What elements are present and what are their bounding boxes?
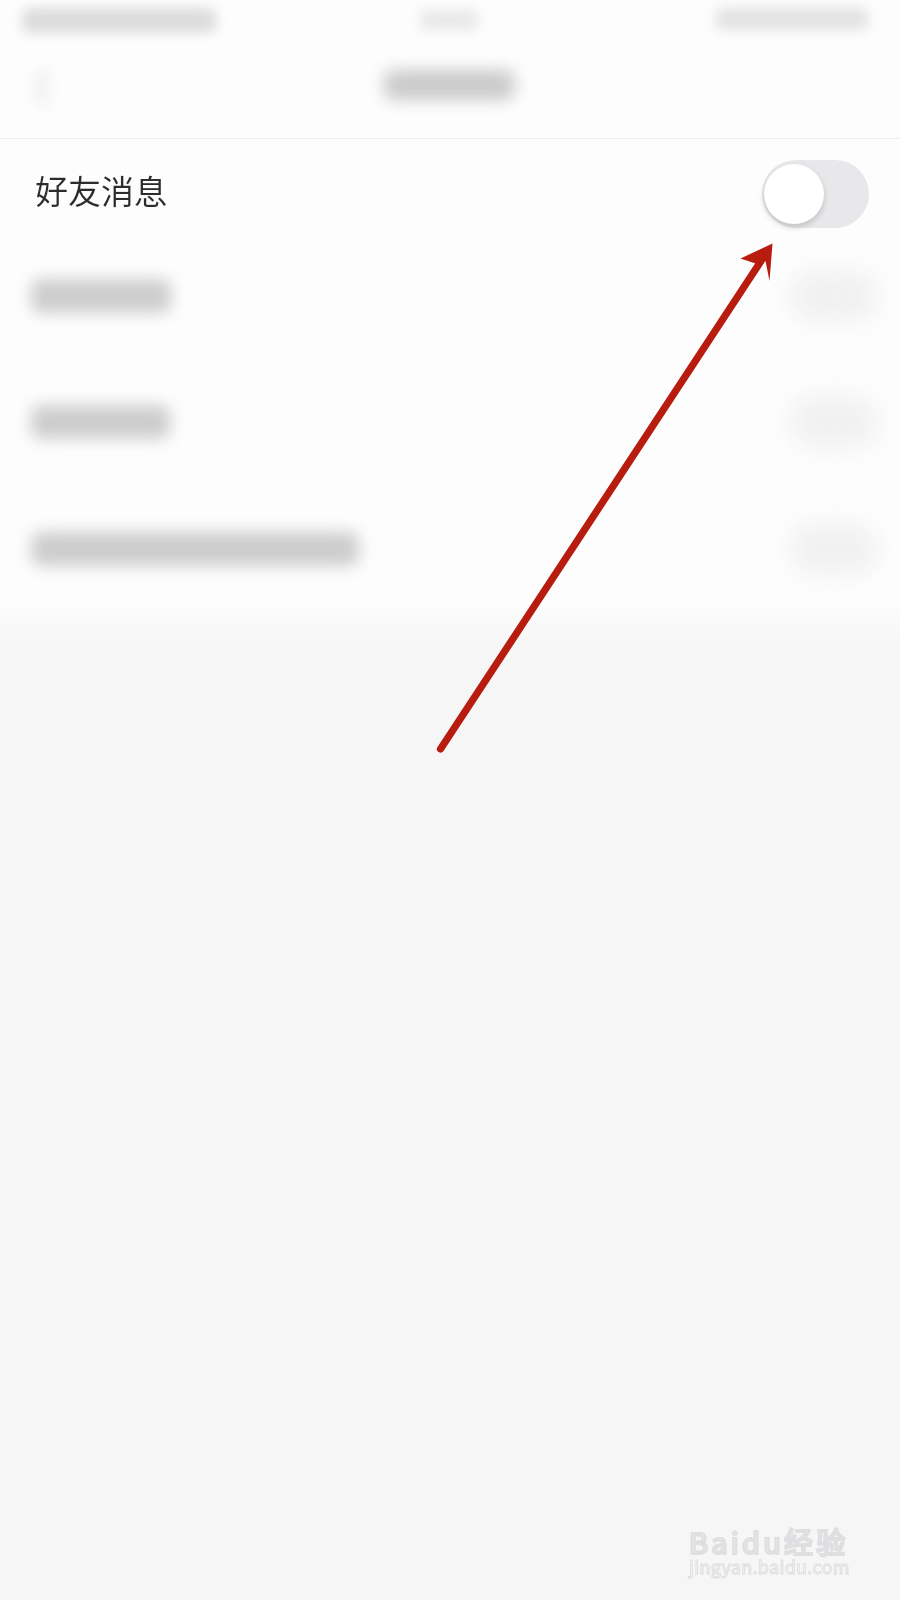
staticText: Baidu经验	[689, 1520, 849, 1562]
button[interactable]: 好友消息开关	[762, 160, 869, 228]
staticText: Baidu经验	[689, 1520, 849, 1562]
button[interactable]: 设置项 3	[0, 361, 900, 483]
staticText: jingyan.baidu.com	[689, 1553, 850, 1579]
staticText: jingyan.baidu.com	[689, 1553, 850, 1579]
staticText: 好友消息	[35, 166, 167, 214]
button[interactable]: 好友消息	[0, 136, 900, 244]
button[interactable]: 设置项 2	[0, 235, 900, 357]
button[interactable]: 设置项 4	[0, 488, 900, 610]
